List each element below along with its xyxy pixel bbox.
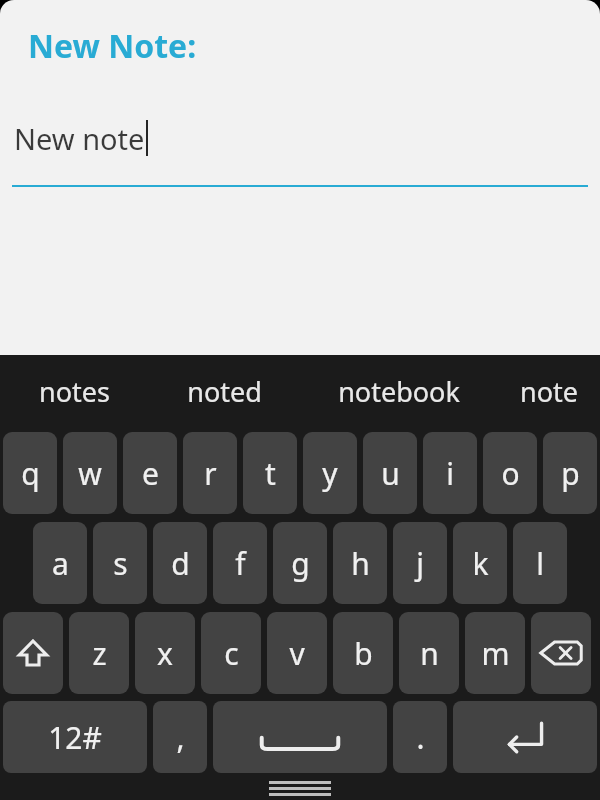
staticText: c [224, 633, 239, 674]
staticText: 12# [48, 717, 102, 758]
button[interactable]: c [201, 612, 261, 694]
staticText: y [322, 453, 338, 494]
staticText: x [157, 633, 173, 674]
button[interactable]: u [363, 432, 417, 514]
button[interactable]: x [135, 612, 195, 694]
button[interactable]: r [183, 432, 237, 514]
staticText: New Note: [28, 24, 197, 68]
staticText: p [561, 453, 580, 494]
button[interactable]: p [543, 432, 597, 514]
button[interactable]: noted [148, 355, 300, 428]
staticText: w [78, 453, 102, 494]
button[interactable]: j [393, 522, 447, 604]
staticText: b [354, 633, 373, 674]
staticText: v [289, 633, 305, 674]
staticText: s [113, 543, 128, 584]
staticText: notebook [338, 373, 460, 410]
button[interactable]: q [3, 432, 57, 514]
button[interactable]: Backspace [531, 612, 591, 694]
staticText: u [381, 453, 400, 494]
staticText: j [416, 543, 424, 584]
staticText: d [171, 543, 190, 584]
button[interactable]: a [33, 522, 87, 604]
button[interactable]: Shift [3, 612, 63, 694]
button[interactable]: d [153, 522, 207, 604]
button[interactable]: note [498, 355, 600, 428]
button[interactable]: y [303, 432, 357, 514]
button[interactable]: b [333, 612, 393, 694]
staticText: q [21, 453, 40, 494]
button[interactable]: notes [0, 355, 148, 428]
staticText: , [176, 717, 185, 758]
staticText: o [501, 453, 520, 494]
staticText: n [420, 633, 439, 674]
button[interactable]: t [243, 432, 297, 514]
button[interactable]: , [153, 701, 207, 773]
button[interactable]: Space [213, 701, 387, 773]
button[interactable]: o [483, 432, 537, 514]
staticText: . [416, 717, 425, 758]
staticText: a [52, 543, 69, 584]
button[interactable]: New note [0, 92, 600, 187]
button[interactable]: h [333, 522, 387, 604]
button[interactable]: s [93, 522, 147, 604]
staticText: i [446, 453, 454, 494]
button[interactable]: v [267, 612, 327, 694]
staticText: e [142, 453, 159, 494]
staticText: note [520, 373, 578, 410]
button[interactable]: Enter [453, 701, 597, 773]
button[interactable]: z [69, 612, 129, 694]
button[interactable]: f [213, 522, 267, 604]
button[interactable]: . [393, 701, 447, 773]
staticText: t [265, 453, 276, 494]
staticText: noted [187, 373, 262, 410]
staticText: k [472, 543, 489, 584]
button[interactable]: g [273, 522, 327, 604]
button[interactable]: notebook [300, 355, 498, 428]
staticText: z [92, 633, 107, 674]
staticText: g [291, 543, 310, 584]
staticText: m [481, 633, 510, 674]
staticText: l [536, 543, 544, 584]
button[interactable]: m [465, 612, 525, 694]
button[interactable]: w [63, 432, 117, 514]
button[interactable]: i [423, 432, 477, 514]
button[interactable]: n [399, 612, 459, 694]
button[interactable]: Symbols [3, 701, 147, 773]
staticText: New note [14, 119, 145, 158]
button[interactable]: e [123, 432, 177, 514]
staticText: h [351, 543, 370, 584]
staticText: notes [39, 373, 110, 410]
staticText: f [235, 543, 246, 584]
staticText: r [204, 453, 217, 494]
button[interactable]: k [453, 522, 507, 604]
button[interactable]: l [513, 522, 567, 604]
